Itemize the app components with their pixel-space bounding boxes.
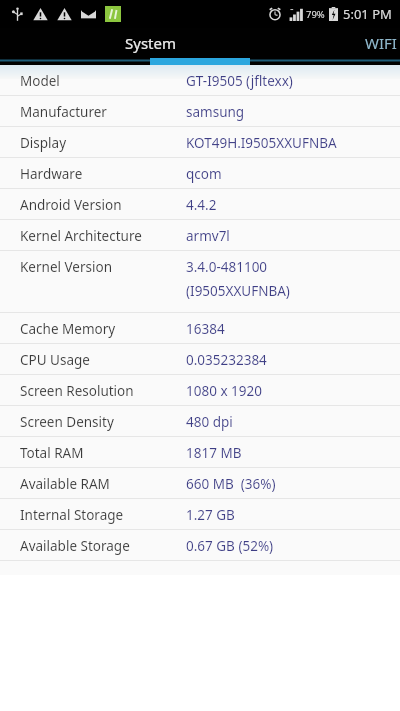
- staticText: 660 MB (36%): [186, 475, 276, 493]
- staticText: WIFI: [365, 33, 397, 53]
- staticText: samsung: [186, 103, 245, 121]
- button[interactable]: Display: [0, 127, 400, 158]
- staticText: (I9505XXUFNBA): [186, 282, 290, 300]
- staticText: Internal Storage: [20, 506, 186, 524]
- button[interactable]: Internal Storage: [0, 499, 400, 530]
- button[interactable]: Total RAM: [0, 437, 400, 468]
- staticText: Manufacturer: [20, 103, 186, 121]
- button[interactable]: Manufacturer: [0, 96, 400, 127]
- staticText: 79%: [306, 8, 325, 21]
- staticText: Available RAM: [20, 475, 186, 493]
- staticText: KOT49H.I9505XXUFNBA: [186, 134, 337, 152]
- staticText: Cache Memory: [20, 320, 186, 338]
- staticText: Screen Resolution: [20, 382, 186, 400]
- button[interactable]: Model: [0, 65, 400, 96]
- staticText: Model: [20, 72, 186, 90]
- staticText: Kernel Version: [20, 258, 186, 276]
- staticText: Kernel Architecture: [20, 227, 186, 245]
- staticText: 1817 MB: [186, 444, 242, 462]
- staticText: 1080 x 1920: [186, 382, 262, 400]
- staticText: 1.27 GB: [186, 506, 235, 524]
- button[interactable]: Available RAM: [0, 468, 400, 499]
- button[interactable]: WIFI: [330, 28, 400, 65]
- button[interactable]: Screen Resolution: [0, 375, 400, 406]
- staticText: 5:01 PM: [343, 5, 392, 23]
- button[interactable]: Hardware: [0, 158, 400, 189]
- button[interactable]: Cache Memory: [0, 313, 400, 344]
- staticText: 3.4.0-481100: [186, 258, 268, 276]
- staticText: armv7l: [186, 227, 230, 245]
- button[interactable]: Android Version: [0, 189, 400, 220]
- button[interactable]: CPU Usage: [0, 344, 400, 375]
- staticText: Screen Density: [20, 413, 186, 431]
- staticText: Hardware: [20, 165, 186, 183]
- staticText: System: [125, 33, 176, 53]
- staticText: 0.67 GB (52%): [186, 537, 274, 555]
- staticText: 16384: [186, 320, 225, 338]
- staticText: GT-I9505 (jfltexx): [186, 72, 293, 90]
- staticText: 480 dpi: [186, 413, 233, 431]
- staticText: Total RAM: [20, 444, 186, 462]
- staticText: 0.035232384: [186, 351, 267, 369]
- staticText: qcom: [186, 165, 222, 183]
- staticText: CPU Usage: [20, 351, 186, 369]
- staticText: Android Version: [20, 196, 186, 214]
- button[interactable]: Kernel Version: [0, 251, 400, 313]
- button[interactable]: Available Storage: [0, 530, 400, 561]
- button[interactable]: Screen Density: [0, 406, 400, 437]
- staticText: Available Storage: [20, 537, 186, 555]
- button[interactable]: System: [100, 28, 200, 65]
- staticText: 4.4.2: [186, 196, 217, 214]
- staticText: Display: [20, 134, 186, 152]
- button[interactable]: Kernel Architecture: [0, 220, 400, 251]
